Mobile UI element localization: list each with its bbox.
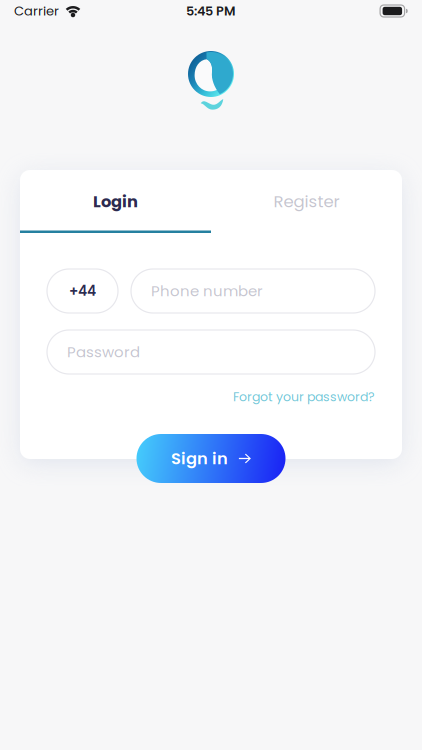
staticText: +44	[69, 281, 96, 301]
staticText: Register	[273, 190, 339, 213]
staticText: Phone number	[151, 280, 263, 301]
staticText: Sign in	[171, 447, 228, 470]
staticText: Password	[67, 341, 140, 362]
staticText: Login	[93, 190, 138, 213]
button[interactable]: Register	[211, 170, 402, 233]
button[interactable]: Sign in	[136, 434, 285, 483]
button[interactable]: Forgot your password?	[233, 388, 375, 405]
staticText: 5:45 PM	[186, 2, 236, 20]
staticText: Carrier	[14, 2, 59, 20]
button[interactable]: Login	[20, 170, 211, 233]
staticText: Forgot your password?	[233, 388, 375, 405]
